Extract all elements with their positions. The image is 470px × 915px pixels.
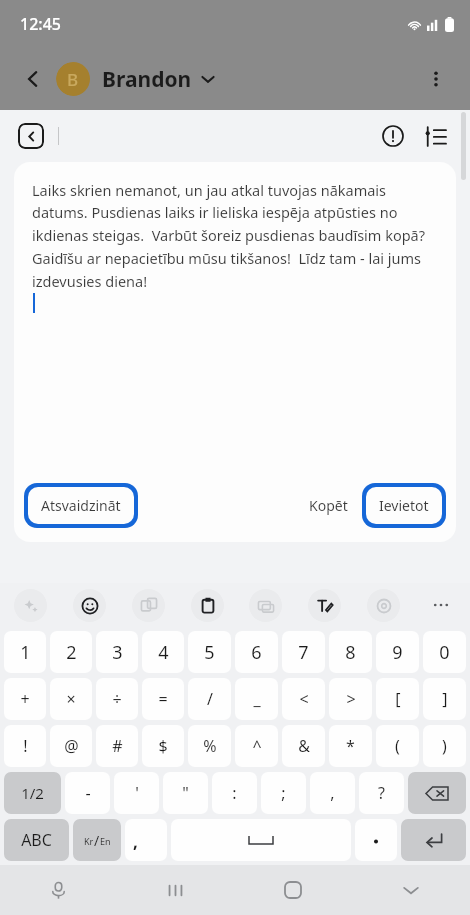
button[interactable]: Handwriting: [308, 589, 341, 622]
button[interactable]: 6: [235, 631, 278, 673]
button[interactable]: Text options: [418, 119, 452, 153]
button[interactable]: ×: [50, 678, 92, 720]
button[interactable]: ,: [310, 772, 355, 814]
button[interactable]: ,: [125, 819, 167, 861]
staticText: @: [64, 735, 79, 757]
button[interactable]: ]: [423, 678, 466, 720]
button[interactable]: 2: [50, 631, 92, 673]
button[interactable]: Home: [234, 865, 352, 915]
staticText: [: [395, 688, 401, 710]
button[interactable]: Kopēt: [299, 488, 358, 523]
staticText: :: [232, 782, 237, 804]
button[interactable]: =: [142, 678, 184, 720]
button[interactable]: Clipboard: [191, 589, 224, 622]
button[interactable]: +: [4, 678, 46, 720]
button[interactable]: More options: [416, 59, 456, 99]
button[interactable]: Emoji: [73, 589, 106, 622]
button[interactable]: ?: [359, 772, 404, 814]
button[interactable]: (: [376, 725, 419, 767]
button[interactable]: 4: [142, 631, 184, 673]
staticText: 8: [345, 640, 356, 665]
staticText: 7: [298, 640, 309, 665]
button[interactable]: 5: [188, 631, 231, 673]
button[interactable]: Settings: [367, 589, 400, 622]
button[interactable]: <: [282, 678, 325, 720]
button[interactable]: &: [282, 725, 325, 767]
button[interactable]: ': [114, 772, 159, 814]
staticText: Brandon: [102, 65, 192, 94]
button[interactable]: Atsvaidzināt: [24, 483, 138, 528]
staticText: Atsvaidzināt: [41, 496, 121, 515]
staticText: 6: [251, 640, 262, 665]
button[interactable]: ): [423, 725, 466, 767]
button[interactable]: _: [235, 678, 278, 720]
staticText: /: [94, 831, 100, 850]
button[interactable]: 7: [282, 631, 325, 673]
button[interactable]: Hide keyboard: [352, 865, 470, 915]
button[interactable]: ": [163, 772, 208, 814]
button[interactable]: Space: [171, 819, 351, 861]
button[interactable]: #: [96, 725, 138, 767]
staticText: ]: [442, 688, 448, 710]
staticText: Kopēt: [309, 496, 348, 515]
staticText: ^: [252, 735, 262, 757]
button[interactable]: Collapse: [18, 123, 44, 149]
button[interactable]: @: [50, 725, 92, 767]
button[interactable]: More: [426, 590, 456, 620]
button[interactable]: Voice input: [0, 865, 117, 915]
button[interactable]: 0: [423, 631, 466, 673]
button[interactable]: Switch language: [73, 819, 121, 861]
button[interactable]: *: [329, 725, 372, 767]
staticText: !: [23, 735, 28, 757]
staticText: %: [203, 735, 217, 757]
staticText: 5: [204, 640, 215, 665]
button[interactable]: :: [212, 772, 257, 814]
button[interactable]: 9: [376, 631, 419, 673]
button[interactable]: Ievietot: [362, 483, 446, 528]
staticText: *: [346, 735, 355, 757]
button[interactable]: Enter: [401, 819, 466, 861]
staticText: ?: [378, 782, 385, 804]
button[interactable]: ÷: [96, 678, 138, 720]
staticText: En: [100, 835, 111, 847]
staticText: ÷: [112, 688, 122, 710]
button[interactable]: 3: [96, 631, 138, 673]
button[interactable]: Information: [376, 119, 410, 153]
button[interactable]: 1/2: [4, 772, 61, 814]
button[interactable]: ;: [261, 772, 306, 814]
staticText: /: [207, 688, 213, 710]
button[interactable]: [: [376, 678, 419, 720]
staticText: (: [395, 735, 400, 757]
button[interactable]: %: [188, 725, 231, 767]
button[interactable]: >: [329, 678, 372, 720]
staticText: 1/2: [21, 783, 44, 803]
button[interactable]: AI suggestions: [14, 589, 47, 622]
staticText: ABC: [21, 829, 52, 851]
button[interactable]: ABC: [4, 819, 69, 861]
button[interactable]: Recent apps: [117, 865, 234, 915]
staticText: ,: [330, 782, 335, 804]
staticText: ;: [281, 782, 286, 804]
staticText: 2: [66, 640, 77, 665]
staticText: 4: [158, 640, 169, 665]
staticText: _: [253, 688, 261, 710]
button[interactable]: ^: [235, 725, 278, 767]
button[interactable]: Backspace: [408, 772, 466, 814]
button[interactable]: -: [65, 772, 110, 814]
button[interactable]: $: [142, 725, 184, 767]
button[interactable]: Keyboard layout: [249, 589, 282, 622]
staticText: <: [299, 688, 309, 710]
button[interactable]: Back: [14, 60, 52, 98]
button[interactable]: 1: [4, 631, 46, 673]
staticText: ×: [66, 688, 76, 710]
button[interactable]: 8: [329, 631, 372, 673]
button[interactable]: !: [4, 725, 46, 767]
staticText: Kr: [84, 835, 94, 847]
button[interactable]: Translate: [132, 589, 165, 622]
button[interactable]: /: [188, 678, 231, 720]
staticText: 12:45: [20, 13, 61, 35]
staticText: >: [346, 688, 356, 710]
button[interactable]: [355, 819, 397, 861]
staticText: Laiks skrien nemanot, un jau atkal tuvoj…: [32, 180, 438, 291]
button[interactable]: B: [56, 62, 221, 96]
